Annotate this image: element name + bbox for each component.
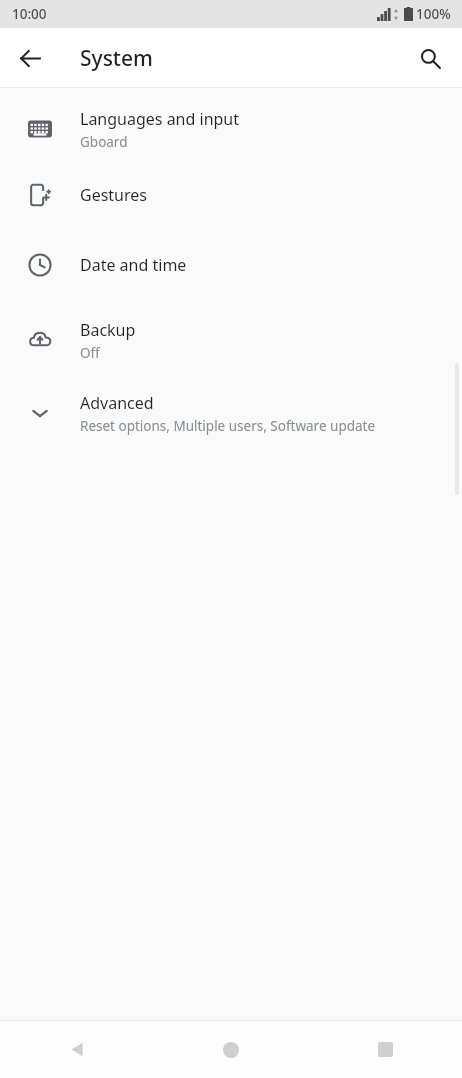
- button[interactable]: Home: [154, 1021, 308, 1078]
- staticText: Gestures: [80, 184, 147, 206]
- staticText: System: [80, 44, 153, 73]
- staticText: Date and time: [80, 254, 187, 276]
- button[interactable]: Gestures: [0, 162, 462, 228]
- staticText: Off: [80, 344, 100, 362]
- staticText: Gboard: [80, 133, 128, 151]
- button[interactable]: Back: [6, 34, 54, 82]
- button[interactable]: Languages and input: [0, 96, 462, 162]
- staticText: 10:00: [12, 5, 47, 23]
- staticText: Backup: [80, 319, 136, 341]
- staticText: Languages and input: [80, 108, 240, 130]
- staticText: Reset options, Multiple users, Software …: [80, 417, 376, 435]
- button[interactable]: Backup: [0, 302, 462, 378]
- button[interactable]: Recent apps: [308, 1021, 462, 1078]
- staticText: Advanced: [80, 392, 154, 414]
- button[interactable]: Date and time: [0, 228, 462, 302]
- button[interactable]: Back: [0, 1021, 154, 1078]
- button[interactable]: Advanced: [0, 378, 462, 448]
- staticText: 100%: [416, 5, 451, 23]
- button[interactable]: Search: [406, 34, 454, 82]
